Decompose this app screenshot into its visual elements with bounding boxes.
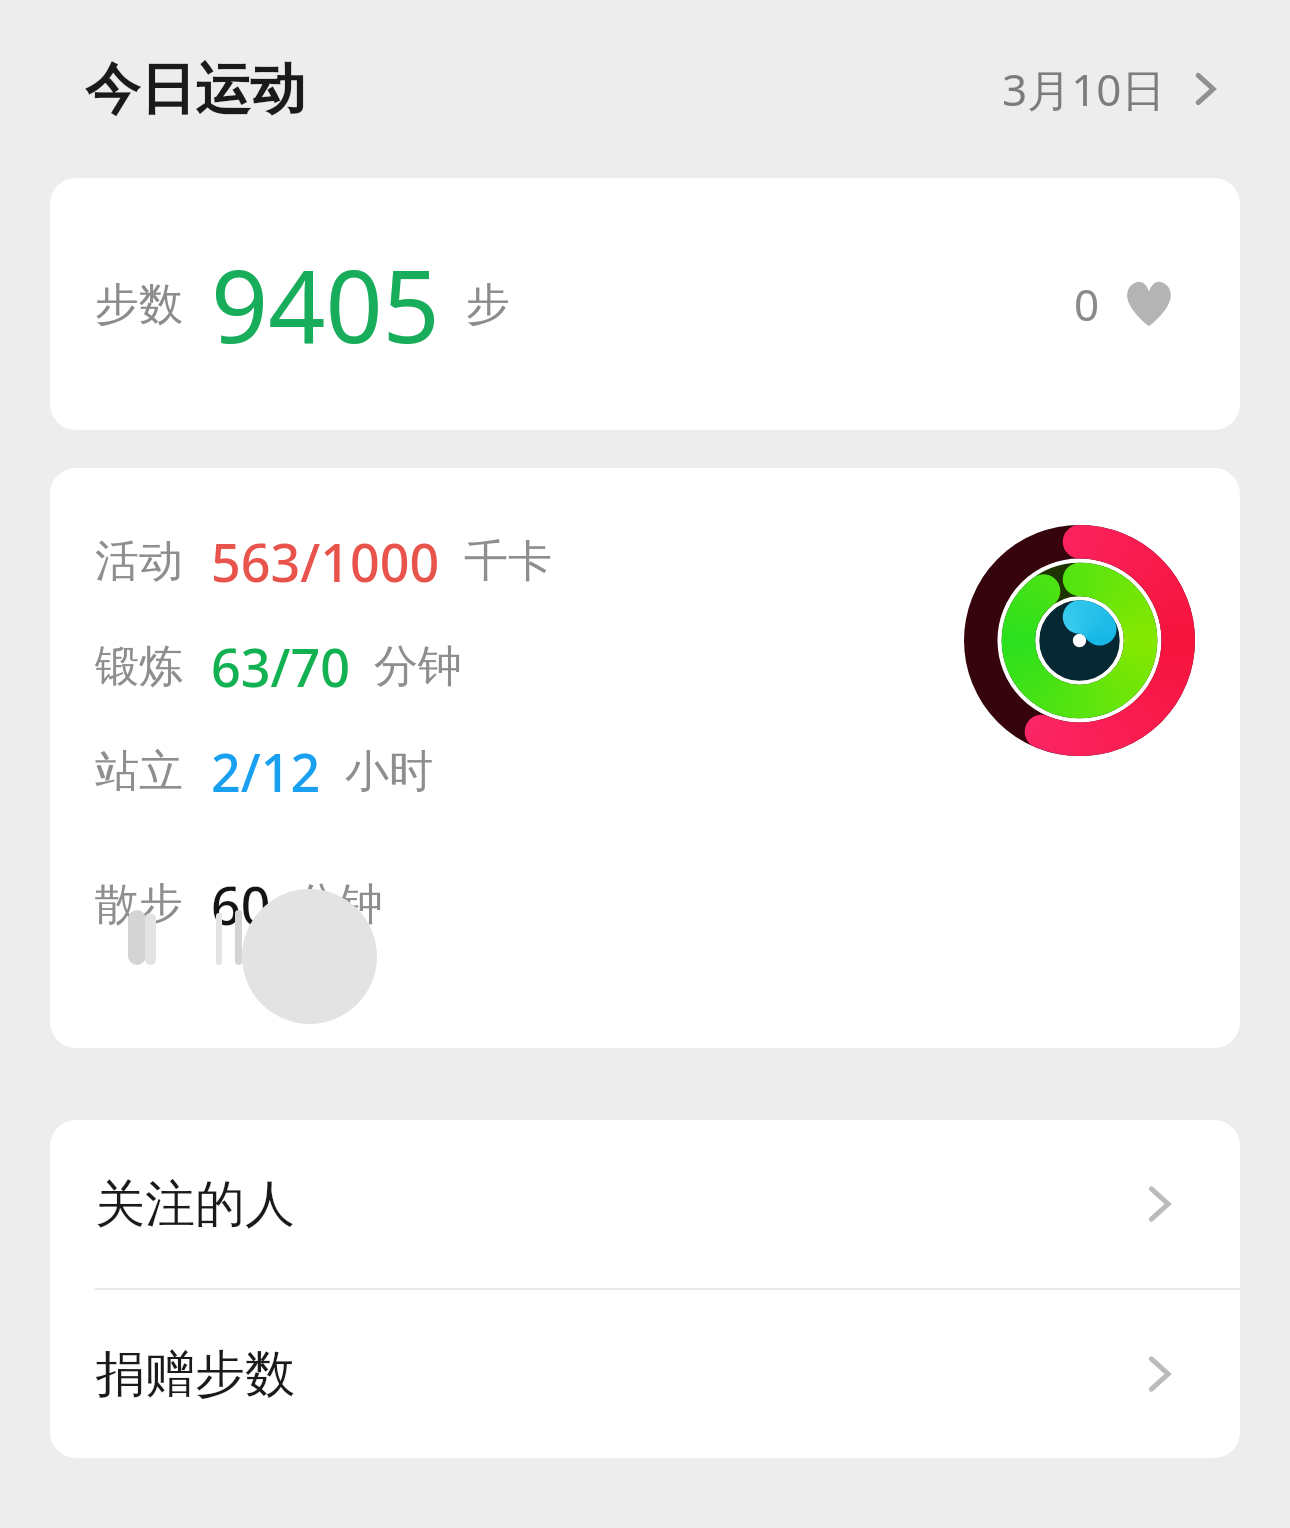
- button[interactable]: 步数: [50, 178, 1240, 430]
- staticText: 0: [1074, 274, 1100, 334]
- staticText: 3月10日: [1002, 59, 1166, 119]
- staticText: 分钟: [295, 877, 383, 932]
- button[interactable]: 关注的人: [50, 1120, 1240, 1288]
- button[interactable]: Like: [1120, 275, 1178, 333]
- staticText: 锻炼: [95, 639, 183, 694]
- staticText: 步数: [95, 277, 183, 332]
- staticText: 步: [466, 277, 510, 332]
- staticText: 捐赠步数: [95, 1343, 295, 1406]
- staticText: 站立: [95, 744, 183, 799]
- staticText: 关注的人: [95, 1173, 295, 1236]
- staticText: 小时: [345, 744, 433, 799]
- staticText: 63/70: [211, 631, 350, 702]
- staticText: 2/12: [211, 736, 321, 807]
- button[interactable]: 捐赠步数: [50, 1290, 1240, 1458]
- button[interactable]: 活动: [50, 468, 1240, 1048]
- staticText: 9405: [211, 236, 440, 372]
- staticText: 散步: [95, 877, 183, 932]
- staticText: 60: [211, 869, 271, 940]
- staticText: 今日运动: [85, 55, 305, 124]
- staticText: 活动: [95, 534, 183, 589]
- staticText: 563/1000: [211, 526, 440, 597]
- staticText: 分钟: [374, 639, 462, 694]
- button[interactable]: 3月10日: [996, 43, 1228, 135]
- staticText: 千卡: [464, 534, 552, 589]
